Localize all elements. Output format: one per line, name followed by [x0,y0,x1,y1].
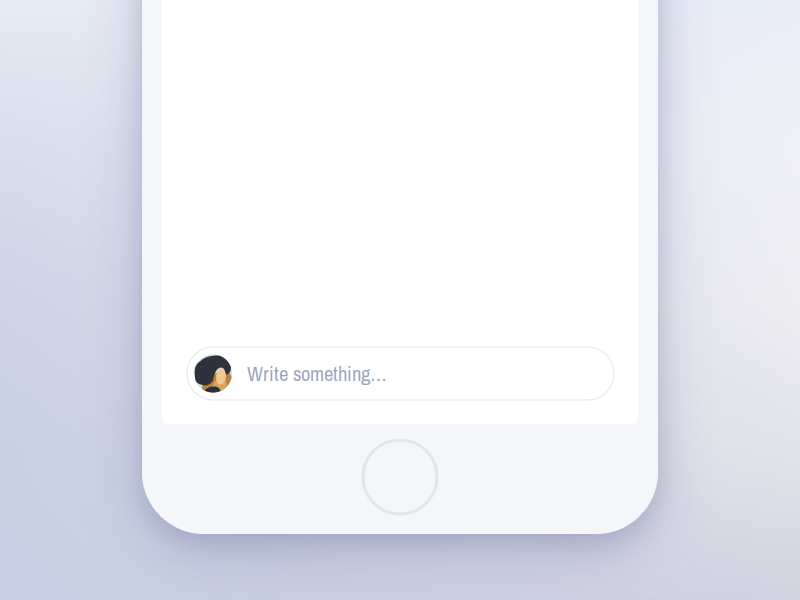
staticText: Write something… [247,360,387,387]
button[interactable]: Write something… [187,347,614,400]
button[interactable]: Home [363,440,437,514]
